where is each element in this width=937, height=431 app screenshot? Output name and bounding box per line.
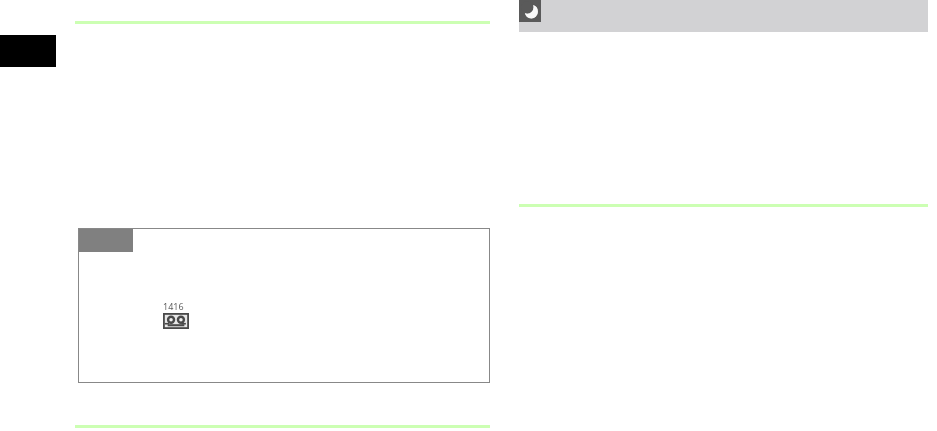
button[interactable]: 1416 — [78, 228, 490, 383]
staticText: 1416 — [163, 300, 184, 312]
other: Site icon — [519, 0, 541, 22]
button[interactable]: Site icon — [519, 0, 928, 32]
other: Missing image — [163, 313, 189, 329]
button[interactable]: 1416 — [163, 300, 189, 329]
